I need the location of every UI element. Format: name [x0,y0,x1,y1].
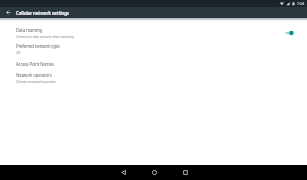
button[interactable]: Preferred network type [0,41,307,57]
staticText: Connect to data services when roaming [16,34,74,39]
staticText: Network operators [16,72,52,78]
staticText: Access Point Names [16,61,54,67]
button[interactable]: Network operators [0,70,307,86]
button[interactable] [141,165,167,180]
staticText: 7:04 [297,1,305,6]
button[interactable]: Access Point Names [0,57,307,70]
staticText: Data roaming [16,27,42,33]
button[interactable] [0,7,16,18]
staticText: 3G [16,50,21,55]
button[interactable]: Data roaming [0,25,307,41]
staticText: Preferred network type [16,43,60,49]
staticText: Cellular network settings [16,10,69,16]
button[interactable] [172,165,198,180]
staticText: Choose a network operator [16,79,56,84]
button[interactable] [110,165,136,180]
